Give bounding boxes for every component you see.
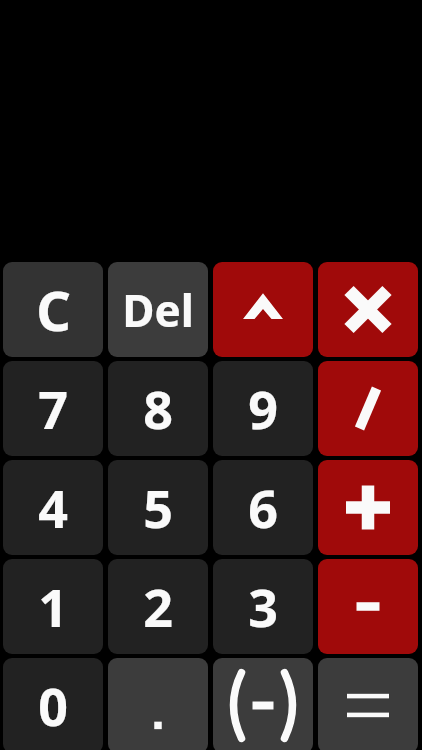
staticText: 3 (248, 571, 278, 642)
button[interactable]: Multiply (318, 262, 418, 357)
staticText: C (36, 273, 71, 347)
staticText: 4 (38, 472, 68, 543)
button[interactable]: Minus (318, 559, 418, 654)
staticText: 9 (248, 373, 278, 444)
button[interactable]: 3 (213, 559, 313, 654)
button[interactable]: 6 (213, 460, 313, 555)
staticText: 8 (143, 373, 173, 444)
staticText: 6 (248, 472, 278, 543)
button[interactable]: 5 (108, 460, 208, 555)
button[interactable]: 2 (108, 559, 208, 654)
button[interactable]: Equals (318, 658, 418, 750)
button[interactable]: 0 (3, 658, 103, 750)
staticText: 1 (38, 571, 68, 642)
button[interactable]: 9 (213, 361, 313, 456)
button[interactable]: Power (213, 262, 313, 357)
staticText: 2 (143, 571, 173, 642)
button[interactable]: 8 (108, 361, 208, 456)
button[interactable]: Plus (318, 460, 418, 555)
staticText: Del (122, 280, 194, 340)
button[interactable]: 4 (3, 460, 103, 555)
staticText: 7 (38, 373, 68, 444)
button[interactable]: Divide (318, 361, 418, 456)
button[interactable]: Del (108, 262, 208, 357)
button[interactable]: Decimal point (108, 658, 208, 750)
button[interactable]: C (3, 262, 103, 357)
staticText: 0 (38, 670, 68, 741)
staticText: 5 (143, 472, 173, 543)
button[interactable]: 7 (3, 361, 103, 456)
button[interactable]: Negate (213, 658, 313, 750)
button[interactable]: 1 (3, 559, 103, 654)
